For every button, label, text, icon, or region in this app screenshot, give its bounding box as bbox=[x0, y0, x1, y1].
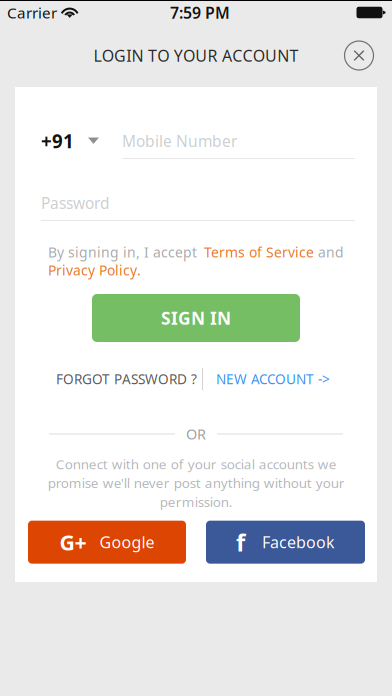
staticText: FORGOT PASSWORD ? bbox=[56, 370, 197, 388]
staticText: +91 bbox=[41, 129, 74, 153]
staticText: Mobile Number bbox=[122, 131, 237, 151]
staticText: SIGN IN bbox=[161, 306, 231, 329]
button[interactable]: +91 bbox=[41, 131, 122, 151]
staticText: 7:59 PM bbox=[170, 2, 230, 23]
staticText: NEW ACCOUNT -> bbox=[216, 370, 330, 388]
staticText: Connect with one of your social accounts… bbox=[47, 455, 344, 511]
staticText: G+ bbox=[59, 528, 86, 556]
staticText: Google bbox=[99, 531, 154, 553]
staticText: f bbox=[236, 526, 245, 558]
button[interactable]: NEW ACCOUNT -> bbox=[216, 367, 331, 391]
staticText: OR bbox=[186, 424, 206, 443]
staticText: Password bbox=[41, 193, 110, 213]
staticText: By signing in, I accept bbox=[48, 243, 197, 261]
button[interactable]: Close bbox=[339, 35, 379, 75]
staticText: and bbox=[318, 243, 344, 261]
staticText: Facebook bbox=[262, 531, 335, 553]
staticText: Privacy Policy. bbox=[48, 261, 141, 279]
button[interactable]: f bbox=[206, 521, 365, 564]
button[interactable]: Terms of Service bbox=[204, 243, 314, 261]
button[interactable]: G+ bbox=[28, 521, 186, 564]
staticText: LOGIN TO YOUR ACCOUNT bbox=[93, 45, 298, 66]
button[interactable]: Privacy Policy. bbox=[48, 261, 141, 279]
button[interactable]: FORGOT PASSWORD ? bbox=[56, 367, 202, 391]
staticText: Carrier bbox=[7, 2, 57, 23]
button[interactable]: SIGN IN bbox=[92, 294, 300, 342]
staticText: Terms of Service bbox=[204, 243, 314, 261]
